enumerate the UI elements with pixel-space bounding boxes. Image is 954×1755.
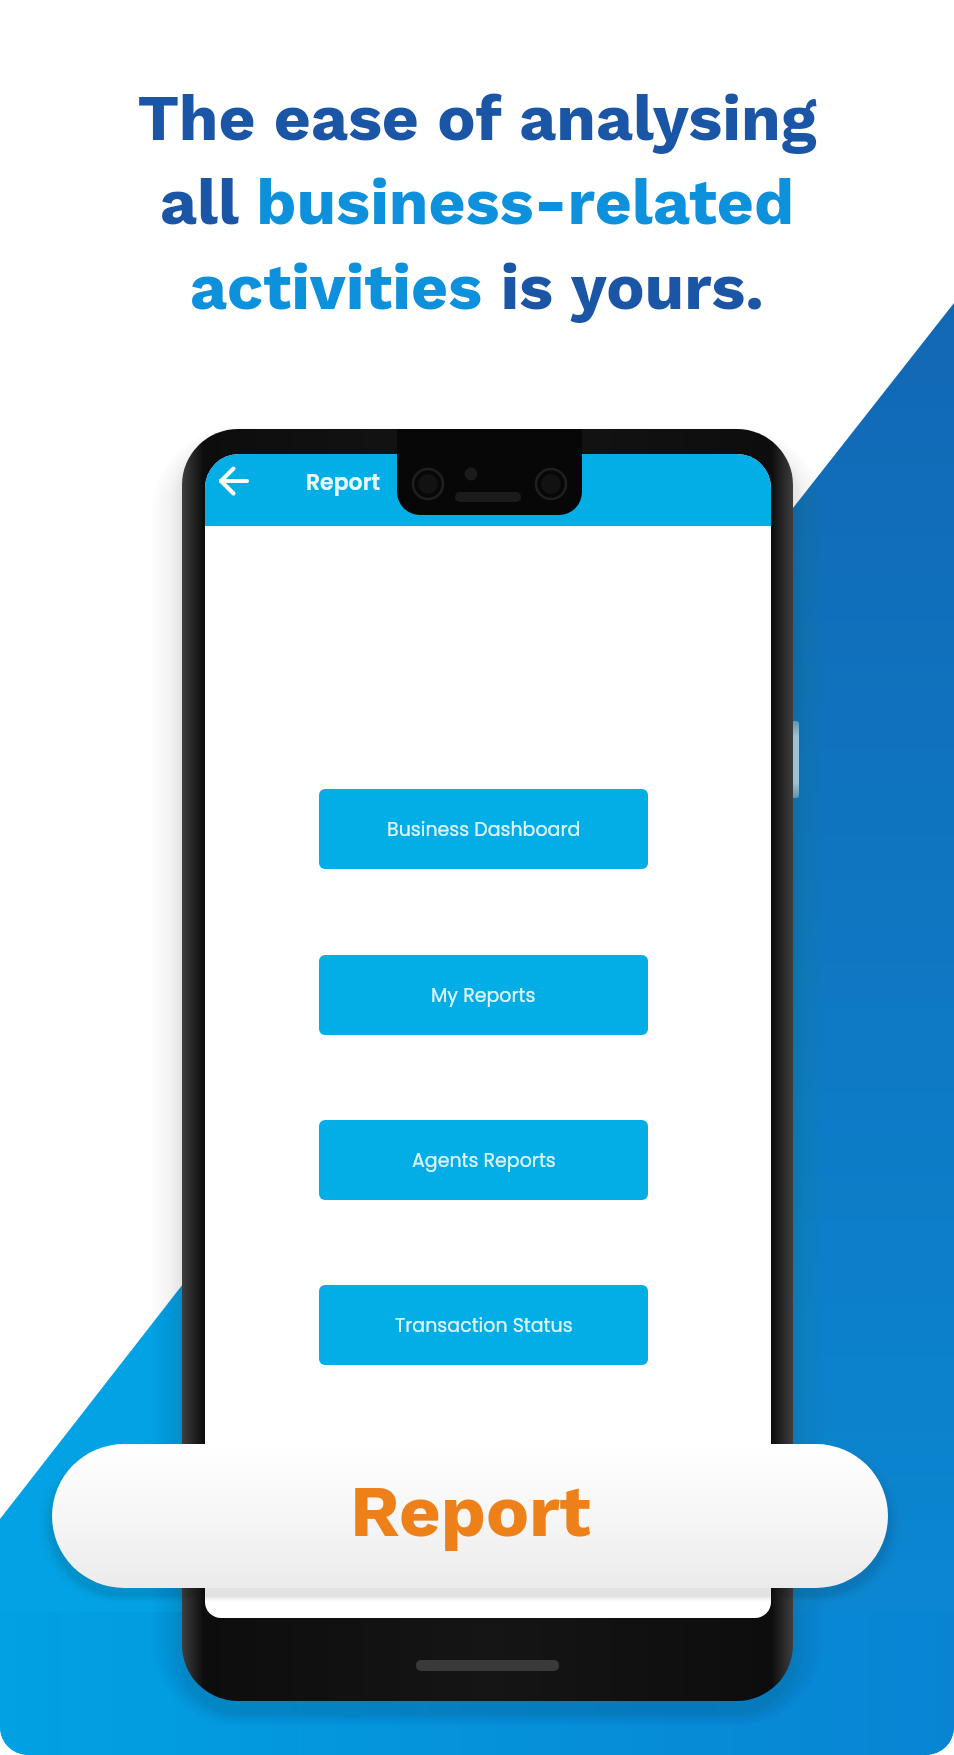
- staticText: Agents Reports: [412, 1147, 556, 1174]
- button[interactable]: Agents Reports: [319, 1120, 648, 1200]
- button[interactable]: Back: [213, 460, 255, 502]
- staticText: Report: [350, 1469, 591, 1553]
- staticText: My Reports: [431, 982, 536, 1009]
- staticText: Report: [306, 467, 381, 498]
- button[interactable]: My Reports: [319, 955, 648, 1035]
- staticText: Transaction Status: [395, 1312, 573, 1339]
- staticText: The ease of analysing all business-relat…: [0, 80, 954, 325]
- button[interactable]: Business Dashboard: [319, 789, 648, 869]
- button[interactable]: Transaction Status: [319, 1285, 648, 1365]
- staticText: Business Dashboard: [387, 816, 581, 843]
- button[interactable]: Report: [52, 1444, 888, 1588]
